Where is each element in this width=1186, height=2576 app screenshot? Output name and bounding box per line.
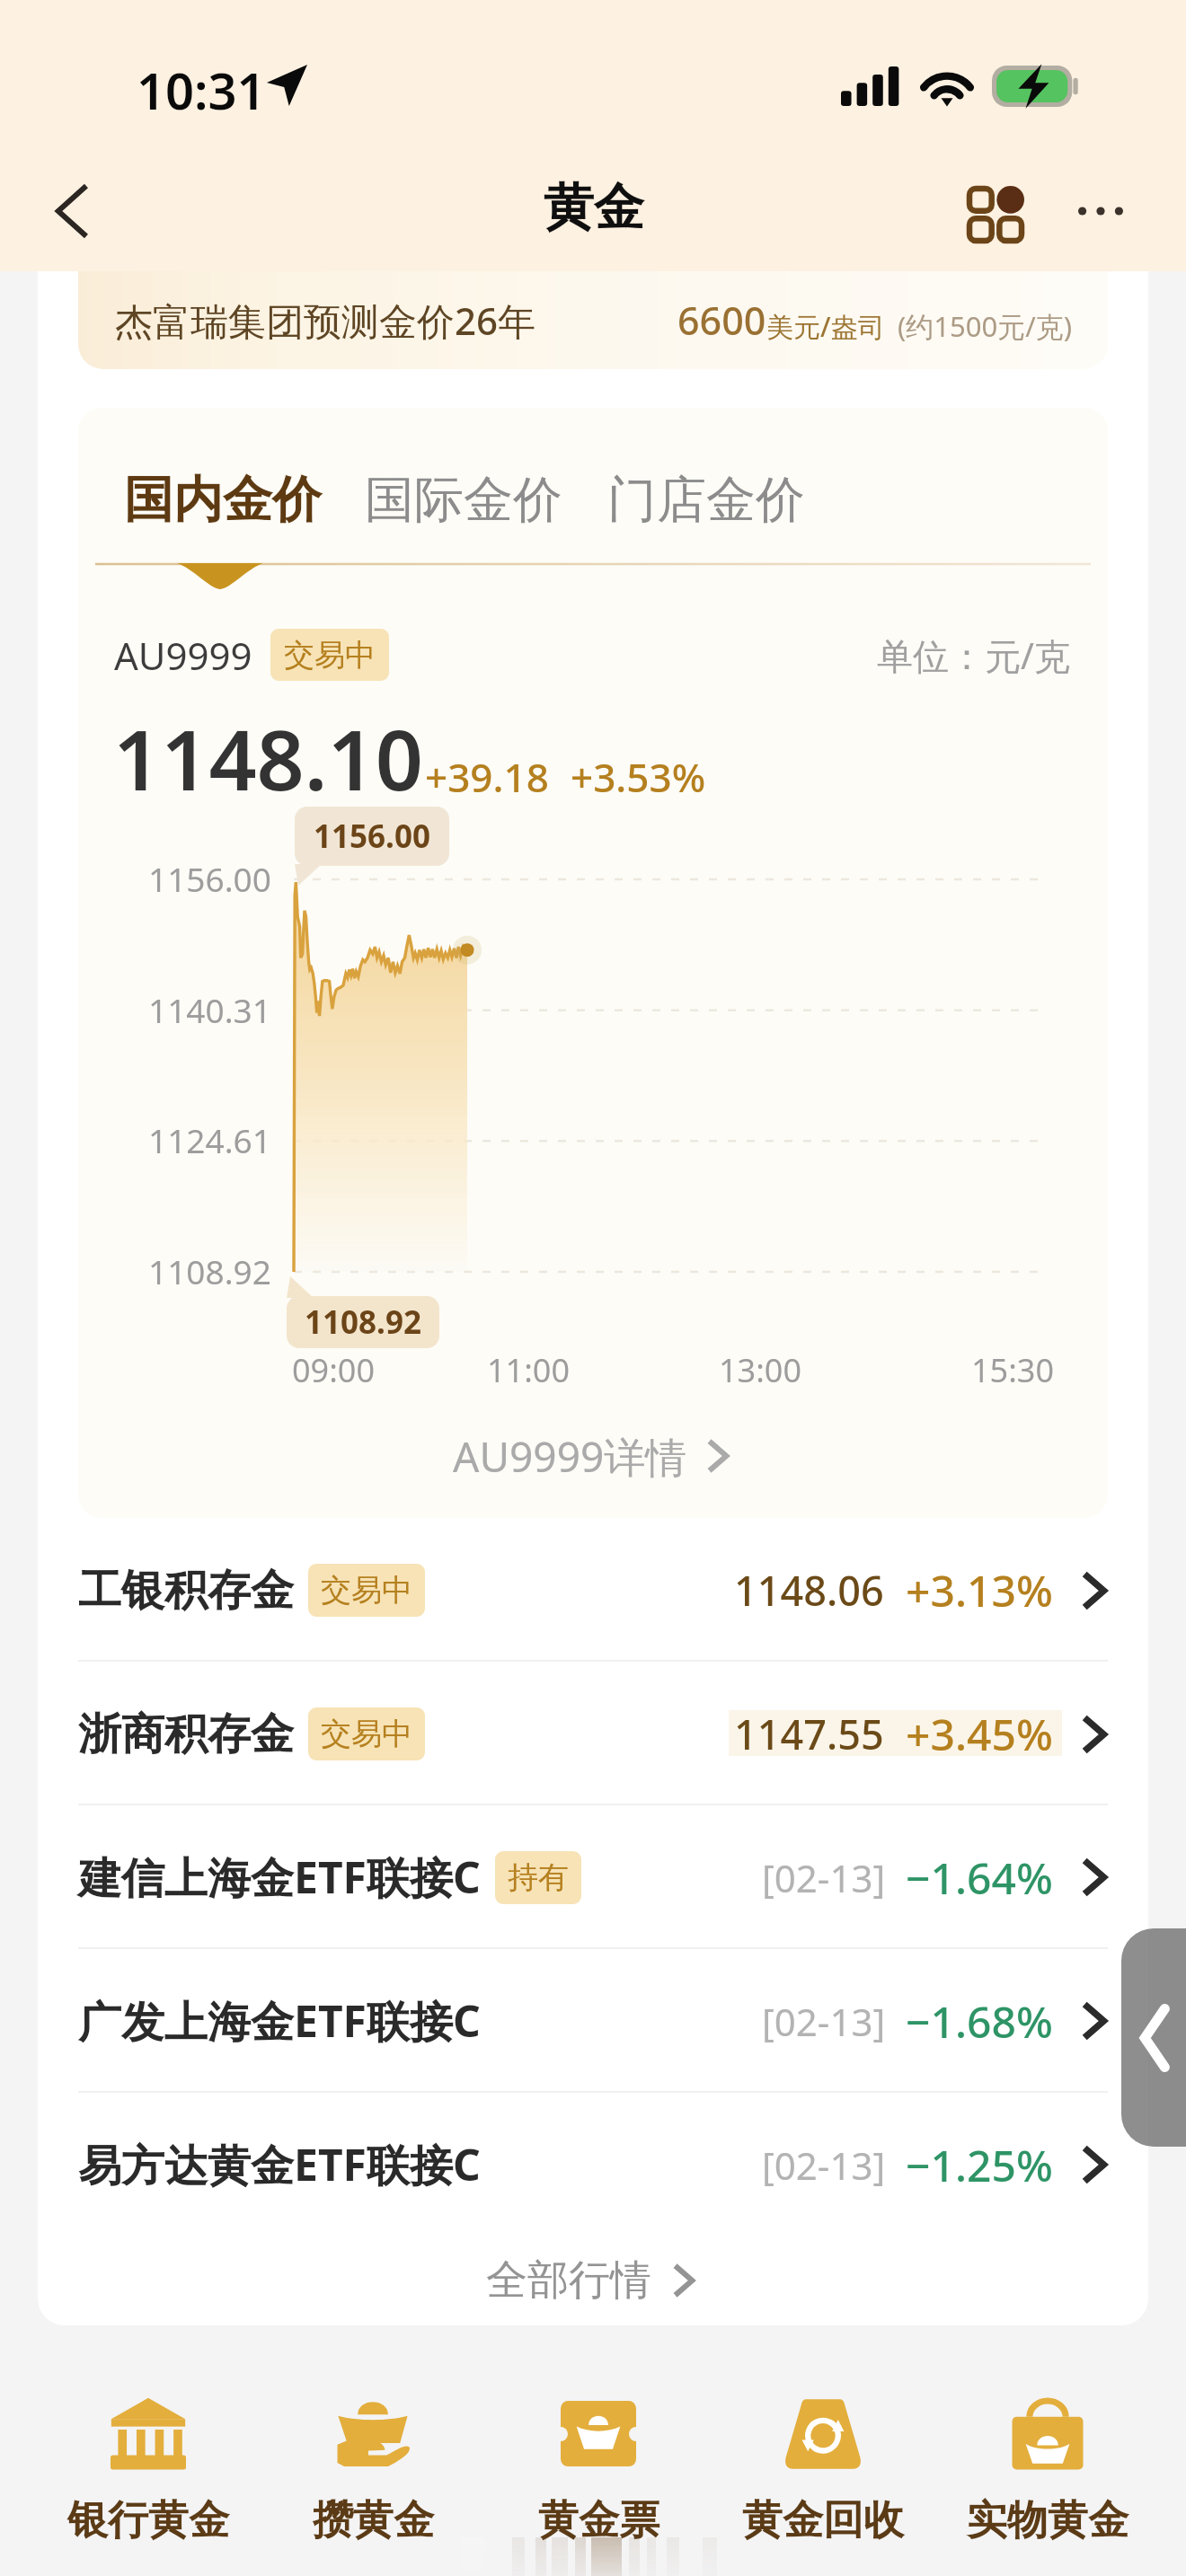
- button[interactable]: 门店金价: [597, 458, 816, 542]
- staticText: +3.13%: [906, 1561, 1053, 1619]
- button[interactable]: 攒黄金: [267, 2389, 479, 2546]
- staticText: +3.53%: [571, 750, 706, 804]
- staticText: 浙商积存金: [78, 1707, 294, 1761]
- button[interactable]: 易方达黄金ETF联接C: [38, 2093, 1148, 2236]
- staticText: 银行黄金: [67, 2495, 229, 2546]
- staticText: −1.64%: [906, 1848, 1053, 1907]
- staticText: 黄金回收: [742, 2495, 904, 2546]
- button[interactable]: 国际金价: [354, 458, 573, 542]
- staticText: −1.25%: [906, 2136, 1053, 2194]
- staticText: 11:00: [487, 1348, 571, 1392]
- button[interactable]: 实物黄金: [942, 2389, 1154, 2546]
- staticText: AU9999: [114, 630, 252, 681]
- staticText: 6600: [677, 294, 766, 347]
- button[interactable]: Open side panel: [1121, 1928, 1186, 2147]
- staticText: 1148.10: [113, 701, 423, 816]
- staticText: 09:00: [292, 1348, 376, 1392]
- staticText: 工银积存金: [78, 1564, 294, 1618]
- button[interactable]: 广发上海金ETF联接C: [38, 1949, 1148, 2093]
- staticText: 单位：元/克: [877, 631, 1070, 680]
- staticText: AU9999详情: [453, 1428, 687, 1485]
- staticText: 1108.92: [305, 1301, 421, 1344]
- staticText: 1148.06: [734, 1563, 884, 1618]
- staticText: 1124.61: [148, 1117, 271, 1162]
- staticText: 建信上海金ETF联接C: [78, 1848, 481, 1907]
- staticText: 交易中: [321, 1571, 412, 1610]
- staticText: 美元/盎司: [766, 308, 885, 345]
- staticText: 国际金价: [365, 469, 562, 531]
- button[interactable]: 工银积存金: [38, 1518, 1148, 1662]
- button[interactable]: 杰富瑞集团预测金价26年: [78, 271, 1108, 369]
- staticText: 门店金价: [607, 469, 805, 531]
- staticText: −1.68%: [906, 1992, 1053, 2051]
- staticText: +39.18: [425, 750, 549, 804]
- staticText: 1147.55: [734, 1707, 884, 1761]
- staticText: 国内金价: [124, 469, 322, 531]
- staticText: 黄金票: [538, 2495, 659, 2546]
- staticText: +3.45%: [906, 1705, 1053, 1763]
- staticText: 15:30: [971, 1348, 1055, 1392]
- staticText: 广发上海金ETF联接C: [78, 1991, 481, 2051]
- button[interactable]: Back: [31, 170, 113, 252]
- staticText: 1140.31: [148, 987, 271, 1032]
- staticText: [02-13]: [762, 2139, 886, 2191]
- button[interactable]: 银行黄金: [42, 2389, 254, 2546]
- button[interactable]: 国内金价: [113, 458, 332, 542]
- staticText: 全部行情: [486, 2254, 651, 2307]
- staticText: 持有: [508, 1858, 569, 1897]
- staticText: 1156.00: [148, 856, 271, 901]
- staticText: 黄金: [544, 176, 644, 240]
- staticText: 攒黄金: [313, 2495, 434, 2546]
- staticText: 易方达黄金ETF联接C: [78, 2135, 481, 2194]
- staticText: 13:00: [719, 1348, 802, 1392]
- button[interactable]: 全部行情: [38, 2236, 1148, 2324]
- staticText: 1156.00: [314, 815, 430, 858]
- staticText: [02-13]: [762, 1996, 886, 2047]
- button[interactable]: AU9999详情: [78, 1407, 1108, 1504]
- staticText: [02-13]: [762, 1852, 886, 1903]
- staticText: 1108.92: [148, 1248, 271, 1293]
- staticText: 交易中: [284, 636, 376, 674]
- button[interactable]: 黄金票: [492, 2389, 704, 2546]
- button[interactable]: 浙商积存金: [38, 1662, 1148, 1805]
- staticText: 实物黄金: [967, 2495, 1128, 2546]
- staticText: 10:31: [137, 56, 266, 124]
- button[interactable]: More options: [1060, 170, 1141, 252]
- button[interactable]: 黄金回收: [717, 2389, 929, 2546]
- staticText: 交易中: [321, 1715, 412, 1753]
- staticText: 杰富瑞集团预测金价26年: [115, 295, 536, 346]
- button[interactable]: Categories: [948, 170, 1038, 252]
- button[interactable]: 建信上海金ETF联接C: [38, 1805, 1148, 1949]
- staticText: (约1500元/克): [898, 307, 1073, 345]
